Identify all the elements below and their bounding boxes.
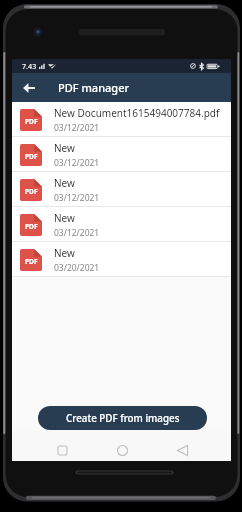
staticText: PDF <box>25 117 38 126</box>
staticText: 03/20/2021 <box>54 262 100 274</box>
staticText: New <box>54 141 75 155</box>
staticText: PDF <box>25 257 38 266</box>
staticText: PDF manager <box>58 80 130 95</box>
button[interactable]: Create PDF from images <box>38 406 207 430</box>
button[interactable]: PDF <box>12 207 231 242</box>
staticText: New <box>54 176 75 190</box>
button[interactable]: Recents <box>50 438 74 462</box>
button[interactable]: PDF <box>12 242 231 277</box>
button[interactable]: Home <box>110 438 134 462</box>
button[interactable]: Back <box>170 438 194 462</box>
staticText: Create PDF from images <box>66 412 180 425</box>
staticText: PDF <box>25 187 38 196</box>
button[interactable]: Back <box>19 78 39 98</box>
staticText: 03/12/2021 <box>54 192 100 204</box>
staticText: 03/12/2021 <box>54 157 100 169</box>
button[interactable]: PDF <box>12 137 231 172</box>
staticText: 03/12/2021 <box>54 122 100 134</box>
staticText: New <box>54 211 75 225</box>
staticText: PDF <box>25 152 38 161</box>
staticText: New Document1615494007784.pdf <box>54 106 220 120</box>
staticText: 03/12/2021 <box>54 227 100 239</box>
button[interactable]: PDF <box>12 102 231 137</box>
staticText: 7.43 <box>22 61 37 71</box>
button[interactable]: PDF <box>12 172 231 207</box>
staticText: New <box>54 246 75 260</box>
staticText: PDF <box>25 222 38 231</box>
